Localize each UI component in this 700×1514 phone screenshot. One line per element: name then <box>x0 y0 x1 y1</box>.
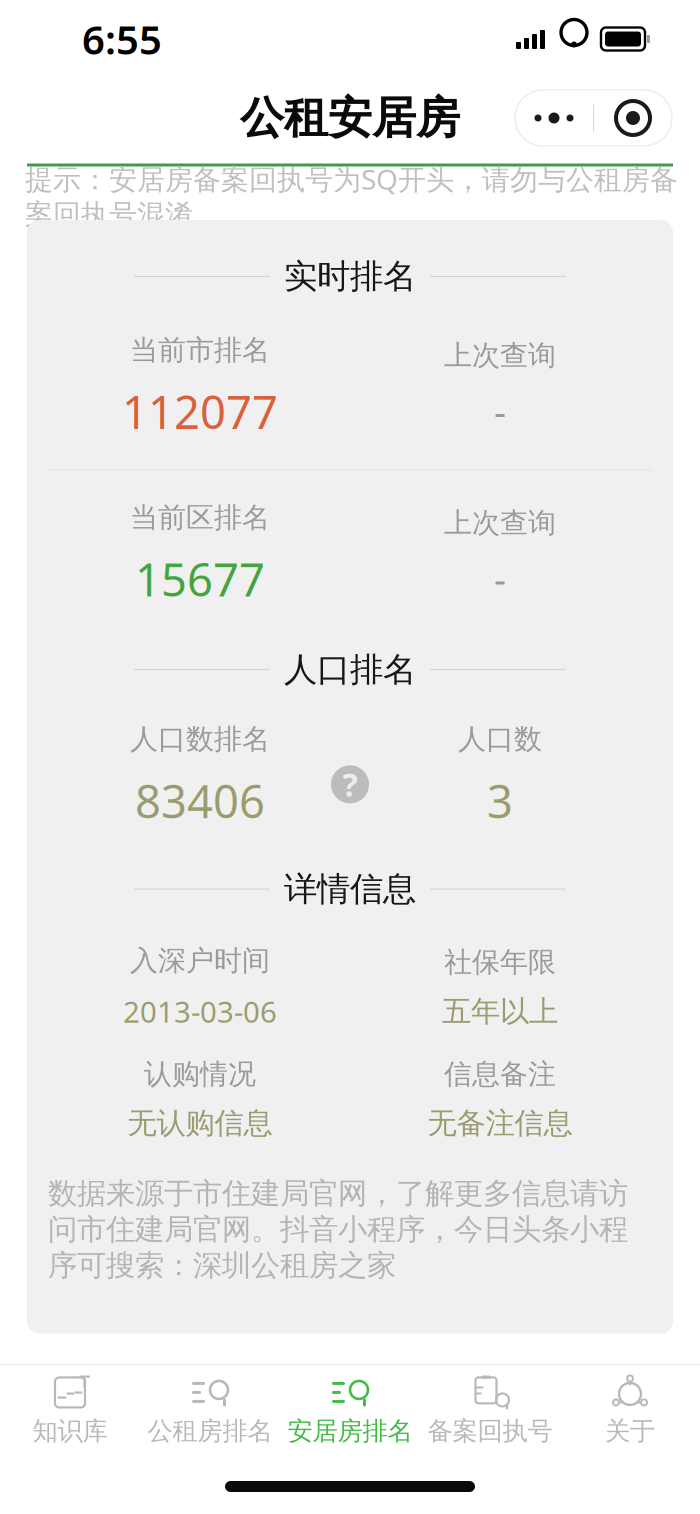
button[interactable]: 更多 <box>515 92 593 144</box>
staticText: 详情信息 <box>284 869 416 910</box>
staticText: - <box>494 387 506 436</box>
staticText: 上次查询 <box>444 506 556 540</box>
staticText: 人口排名 <box>284 649 416 690</box>
staticText: 公租房排名 <box>147 1415 272 1446</box>
staticText: 提示：安居房备案回执号为SQ开头，请勿与公租房备案回执号混淆 <box>25 160 678 232</box>
staticText: 五年以上 <box>442 993 558 1029</box>
staticText: 关于 <box>605 1415 655 1446</box>
staticText: 社保年限 <box>444 945 556 979</box>
staticText: 实时排名 <box>284 256 416 297</box>
staticText: 信息备注 <box>444 1057 556 1091</box>
staticText: 3 <box>487 770 513 831</box>
staticText: 15677 <box>135 549 265 609</box>
staticText: 2013-03-06 <box>123 992 277 1031</box>
staticText: 备案回执号 <box>427 1415 552 1446</box>
button[interactable]: 胶囊按钮 <box>594 92 672 144</box>
staticText: 知识库 <box>32 1415 107 1446</box>
staticText: 入深户时间 <box>130 944 270 978</box>
staticText: 6:55 <box>82 12 162 65</box>
staticText: 人口数 <box>458 722 542 756</box>
button[interactable]: 说明 <box>331 765 369 803</box>
staticText: 无认购信息 <box>127 1105 272 1141</box>
staticText: 当前市排名 <box>130 333 270 367</box>
staticText: 112077 <box>122 381 278 441</box>
staticText: ? <box>342 763 357 806</box>
staticText: 人口数排名 <box>130 722 270 756</box>
staticText: 无备注信息 <box>427 1105 572 1141</box>
staticText: 认购情况 <box>144 1057 256 1091</box>
staticText: 上次查询 <box>444 338 556 373</box>
button[interactable]: 知识库 <box>0 1369 140 1453</box>
staticText: 公租安居房 <box>240 91 460 145</box>
staticText: 安居房排名 <box>287 1415 412 1446</box>
button[interactable]: 关于 <box>560 1369 700 1453</box>
button[interactable]: 公租房排名 <box>140 1369 280 1453</box>
staticText: 当前区排名 <box>130 500 270 535</box>
staticText: 数据来源于市住建局官网，了解更多信息请访问市住建局官网。抖音小程序，今日头条小程… <box>48 1175 628 1283</box>
staticText: 83406 <box>135 770 265 831</box>
button[interactable]: 备案回执号 <box>420 1369 560 1453</box>
staticText: - <box>494 554 506 604</box>
button[interactable]: 安居房排名 <box>280 1369 420 1453</box>
